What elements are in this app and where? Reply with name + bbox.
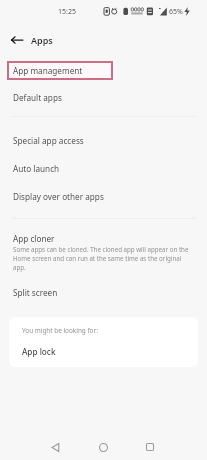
button[interactable]: Display over other apps bbox=[0, 183, 207, 210]
staticText: App lock bbox=[22, 346, 56, 357]
staticText: You might be looking for: bbox=[22, 326, 98, 335]
button[interactable]: Split screen bbox=[0, 279, 207, 306]
button[interactable]: App lock bbox=[9, 338, 198, 364]
button[interactable]: App cloner bbox=[0, 228, 207, 276]
staticText: Split screen bbox=[13, 287, 58, 298]
button[interactable]: Back bbox=[42, 434, 68, 460]
button[interactable]: Auto launch bbox=[0, 155, 207, 182]
staticText: App cloner bbox=[13, 233, 55, 244]
staticText: Some apps can be cloned. The cloned app … bbox=[13, 245, 189, 272]
staticText: Apps bbox=[31, 34, 53, 46]
staticText: 65% bbox=[169, 7, 183, 17]
staticText: Display over other apps bbox=[13, 191, 104, 202]
button[interactable]: Recent apps bbox=[137, 434, 163, 460]
button[interactable]: Special app access bbox=[0, 127, 207, 154]
staticText: 15:25 bbox=[58, 7, 76, 17]
staticText: Auto launch bbox=[13, 163, 60, 174]
staticText: App management bbox=[13, 65, 83, 76]
staticText: Default apps bbox=[13, 92, 62, 103]
button[interactable]: Home bbox=[90, 434, 116, 460]
button[interactable]: Default apps bbox=[0, 84, 207, 111]
button[interactable]: Back bbox=[5, 28, 28, 51]
staticText: Special app access bbox=[13, 135, 84, 146]
button[interactable]: App management bbox=[0, 57, 207, 84]
